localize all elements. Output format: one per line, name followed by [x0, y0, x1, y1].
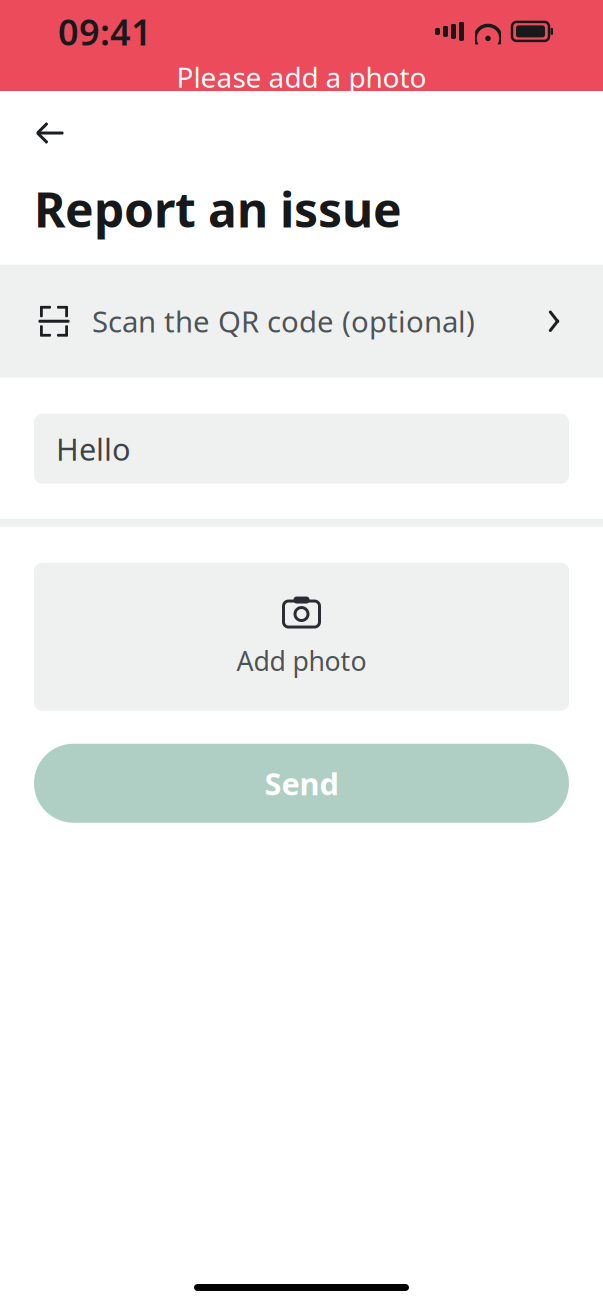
- button[interactable]: Add photo: [0, 527, 603, 711]
- staticText: Scan the QR code (optional): [92, 302, 475, 341]
- staticText: 09:41: [58, 7, 152, 55]
- button[interactable]: Send: [0, 711, 603, 823]
- button[interactable]: Back: [18, 105, 82, 161]
- button[interactable]: Scan the QR code (optional): [0, 265, 603, 378]
- staticText: Hello: [56, 428, 131, 469]
- staticText: Report an issue: [34, 177, 402, 241]
- staticText: Add photo: [236, 643, 366, 678]
- staticText: Please add a photo: [176, 58, 426, 96]
- staticText: Send: [264, 763, 338, 804]
